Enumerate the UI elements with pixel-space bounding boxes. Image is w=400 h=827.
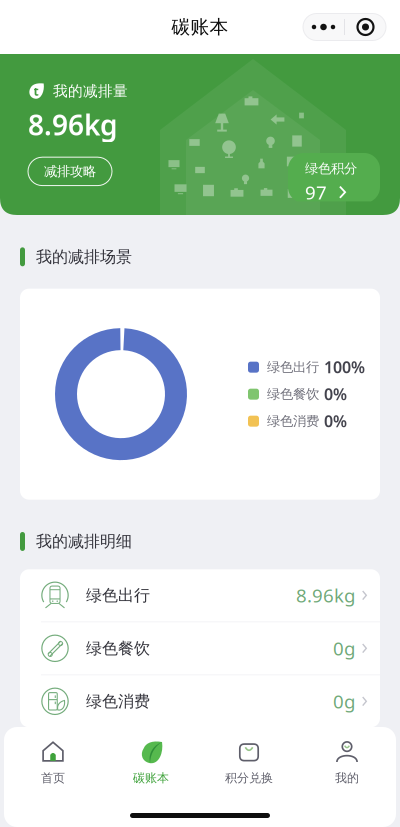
button[interactable]: More <box>303 13 344 40</box>
staticText: 绿色消费 <box>267 413 319 429</box>
staticText: 8.96kg <box>296 583 355 608</box>
button[interactable]: 绿色出行 <box>20 569 380 622</box>
staticText: 我的减排明细 <box>36 532 132 551</box>
button[interactable]: Close mini program <box>345 13 386 40</box>
button[interactable]: 绿色消费 <box>20 675 380 727</box>
staticText: 绿色餐饮 <box>86 638 150 658</box>
staticText: 碳账本 <box>133 771 169 785</box>
button[interactable]: 首页 <box>4 737 102 789</box>
button[interactable]: 积分兑换 <box>200 737 298 789</box>
staticText: 97 <box>305 180 327 205</box>
staticText: 碳账本 <box>171 15 228 38</box>
staticText: 我的减排量 <box>53 82 128 100</box>
button[interactable]: 绿色积分 <box>288 153 380 203</box>
staticText: 0% <box>324 383 347 405</box>
staticText: 我的减排场景 <box>36 247 132 267</box>
staticText: 0g <box>333 689 355 714</box>
staticText: 积分兑换 <box>225 771 273 785</box>
staticText: 绿色积分 <box>305 160 357 177</box>
staticText: 我的 <box>335 771 359 785</box>
staticText: 绿色餐饮 <box>267 386 319 402</box>
staticText: 0% <box>324 410 347 432</box>
staticText: 绿色消费 <box>86 691 150 711</box>
button[interactable]: 绿色餐饮 <box>20 622 380 675</box>
staticText: 100% <box>324 356 365 378</box>
staticText: 减排攻略 <box>44 163 96 180</box>
staticText: 8.96kg <box>28 106 118 143</box>
staticText: t <box>33 83 38 99</box>
staticText: 绿色出行 <box>86 585 150 605</box>
button[interactable]: 碳账本 <box>102 737 200 789</box>
button[interactable]: 我的 <box>298 737 396 789</box>
staticText: 绿色出行 <box>267 359 319 375</box>
staticText: 0g <box>333 636 355 661</box>
staticText: 首页 <box>41 771 65 785</box>
button[interactable]: 减排攻略 <box>28 157 112 186</box>
